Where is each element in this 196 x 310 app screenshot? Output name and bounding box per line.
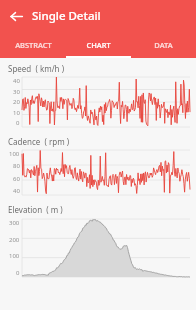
staticText: 0	[16, 119, 20, 127]
staticText: 40	[13, 187, 20, 195]
staticText: Speed ( km/h )	[8, 63, 65, 74]
staticText: 10	[13, 109, 20, 117]
staticText: ABSTRACT	[15, 40, 52, 50]
button[interactable]: CHART	[66, 32, 131, 58]
staticText: Cadence ( rpm )	[8, 136, 70, 147]
staticText: 100	[9, 252, 20, 260]
staticText: 80	[13, 162, 20, 170]
staticText: Elevation ( m )	[8, 204, 63, 215]
staticText: 60	[13, 175, 20, 183]
staticText: 40	[13, 77, 20, 85]
staticText: 300	[9, 219, 20, 227]
staticText: Single Detail	[32, 8, 101, 24]
staticText: CHART	[86, 40, 111, 50]
staticText: 20	[13, 98, 20, 106]
staticText: 30	[13, 88, 20, 96]
staticText: 0	[16, 269, 20, 277]
button[interactable]: DATA	[131, 32, 196, 58]
staticText: 100	[9, 150, 20, 158]
staticText: 200	[9, 236, 20, 244]
staticText: DATA	[154, 40, 173, 50]
button[interactable]: ABSTRACT	[0, 32, 66, 58]
button[interactable]: Back	[5, 5, 27, 27]
